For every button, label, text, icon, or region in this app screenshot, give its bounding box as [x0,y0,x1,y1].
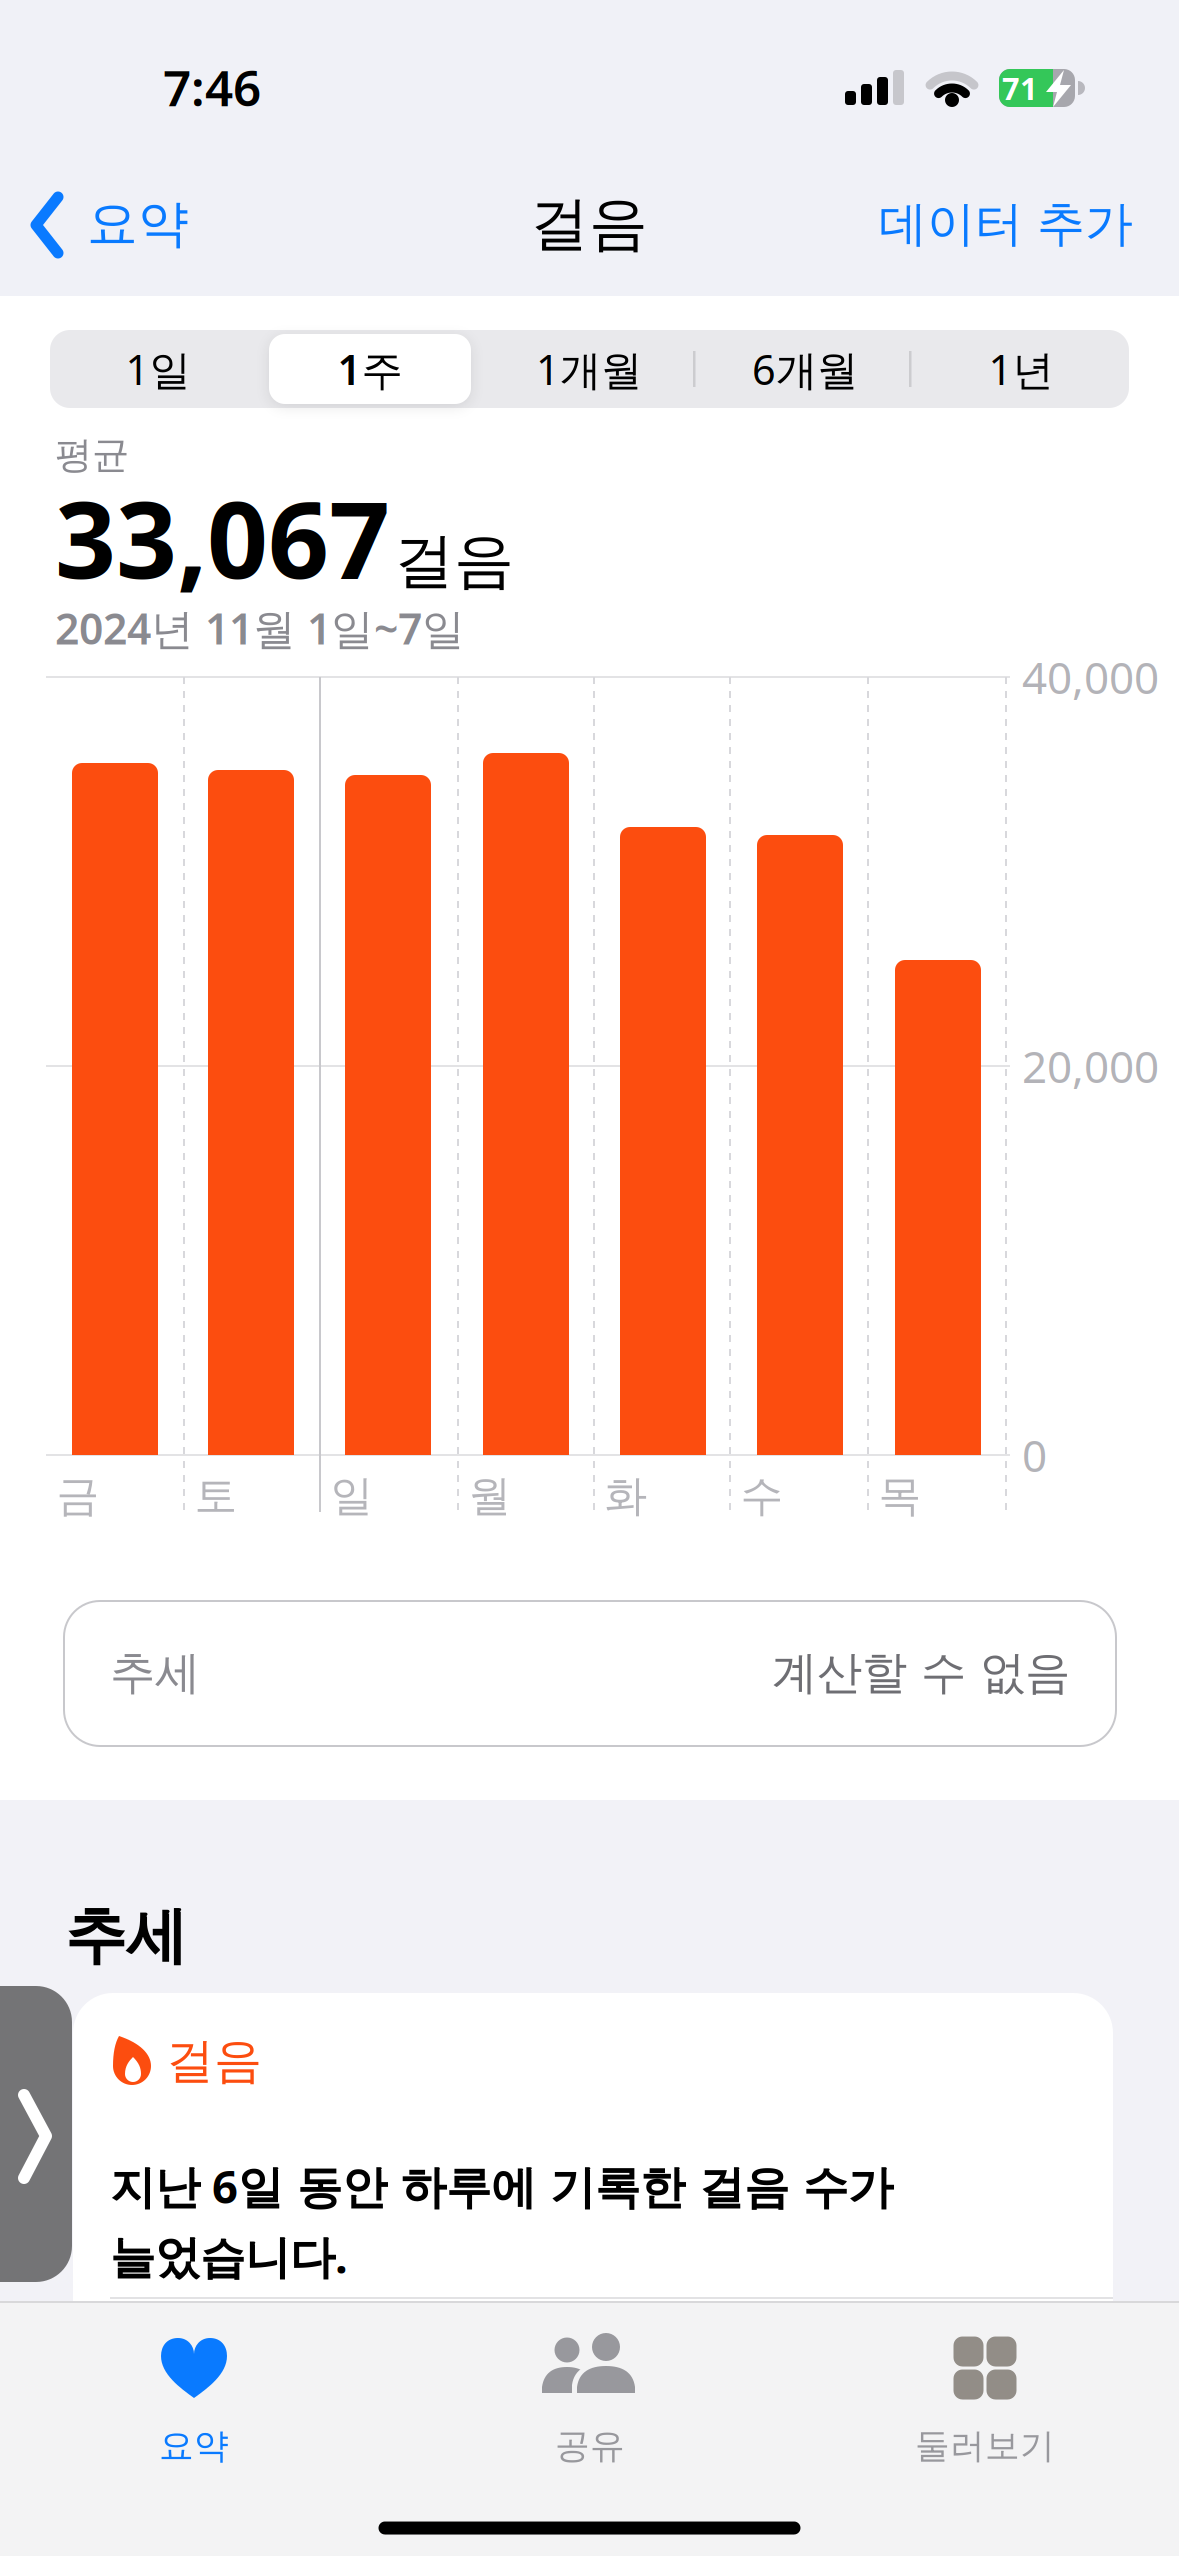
staticText: 요약 [87,193,189,255]
staticText: 지난 6일 동안 하루에 기록한 걸음 수가 [110,2156,893,2216]
staticText: 추세 [110,1645,200,1701]
button[interactable]: 둘러보기 [0,0,1179,2556]
staticText: 71 [1002,68,1038,108]
button[interactable]: 추세 [0,0,1179,2556]
staticText: 1개월 [536,342,642,396]
staticText: 6개월 [752,342,858,396]
staticText: 2024년 11월 1일~7일 [55,600,465,656]
staticText: 7:46 [163,54,261,120]
button[interactable]: 1개월 [0,0,1179,2556]
button[interactable]: 공유 [0,0,1179,2556]
staticText: 둘러보기 [915,2425,1055,2467]
button[interactable]: 걸음 [0,0,1179,2556]
button[interactable]: 1일 [0,0,1179,2556]
staticText: 공유 [555,2425,625,2467]
staticText: 요약 [159,2425,229,2467]
staticText: 평균 [55,432,129,478]
staticText: 금 [56,1470,99,1522]
button[interactable]: 1년 [0,0,1179,2556]
staticText: 늘었습니다. [110,2226,348,2286]
staticText: 목 [878,1470,921,1522]
button[interactable]: 6개월 [0,0,1179,2556]
button[interactable]: 요약 [0,0,1179,2556]
button[interactable]: 요약 [0,0,1179,2556]
staticText: 40,000 [1022,648,1159,706]
staticText: 1일 [125,342,190,396]
staticText: 20,000 [1022,1037,1159,1095]
staticText: 계산할 수 없음 [772,1645,1070,1701]
staticText: 걸음 [394,524,514,598]
staticText: 1주 [337,342,402,396]
staticText: 33,067 [55,466,390,608]
button[interactable]: 1주 [0,0,1179,2556]
staticText: 토 [194,1470,237,1522]
staticText: 수 [740,1470,783,1522]
staticText: 0 [1022,1426,1047,1484]
button[interactable]: 데이터 추가 [0,0,1179,2556]
staticText: 1년 [988,342,1053,396]
staticText: 화 [604,1470,647,1522]
staticText: 걸음 [530,188,648,260]
button[interactable] [0,0,1179,2556]
staticText: 일 [330,1470,373,1522]
staticText: 월 [468,1470,511,1522]
staticText: 데이터 추가 [879,194,1133,253]
staticText: 걸음 [166,2031,262,2090]
staticText: 추세 [65,1898,187,1974]
